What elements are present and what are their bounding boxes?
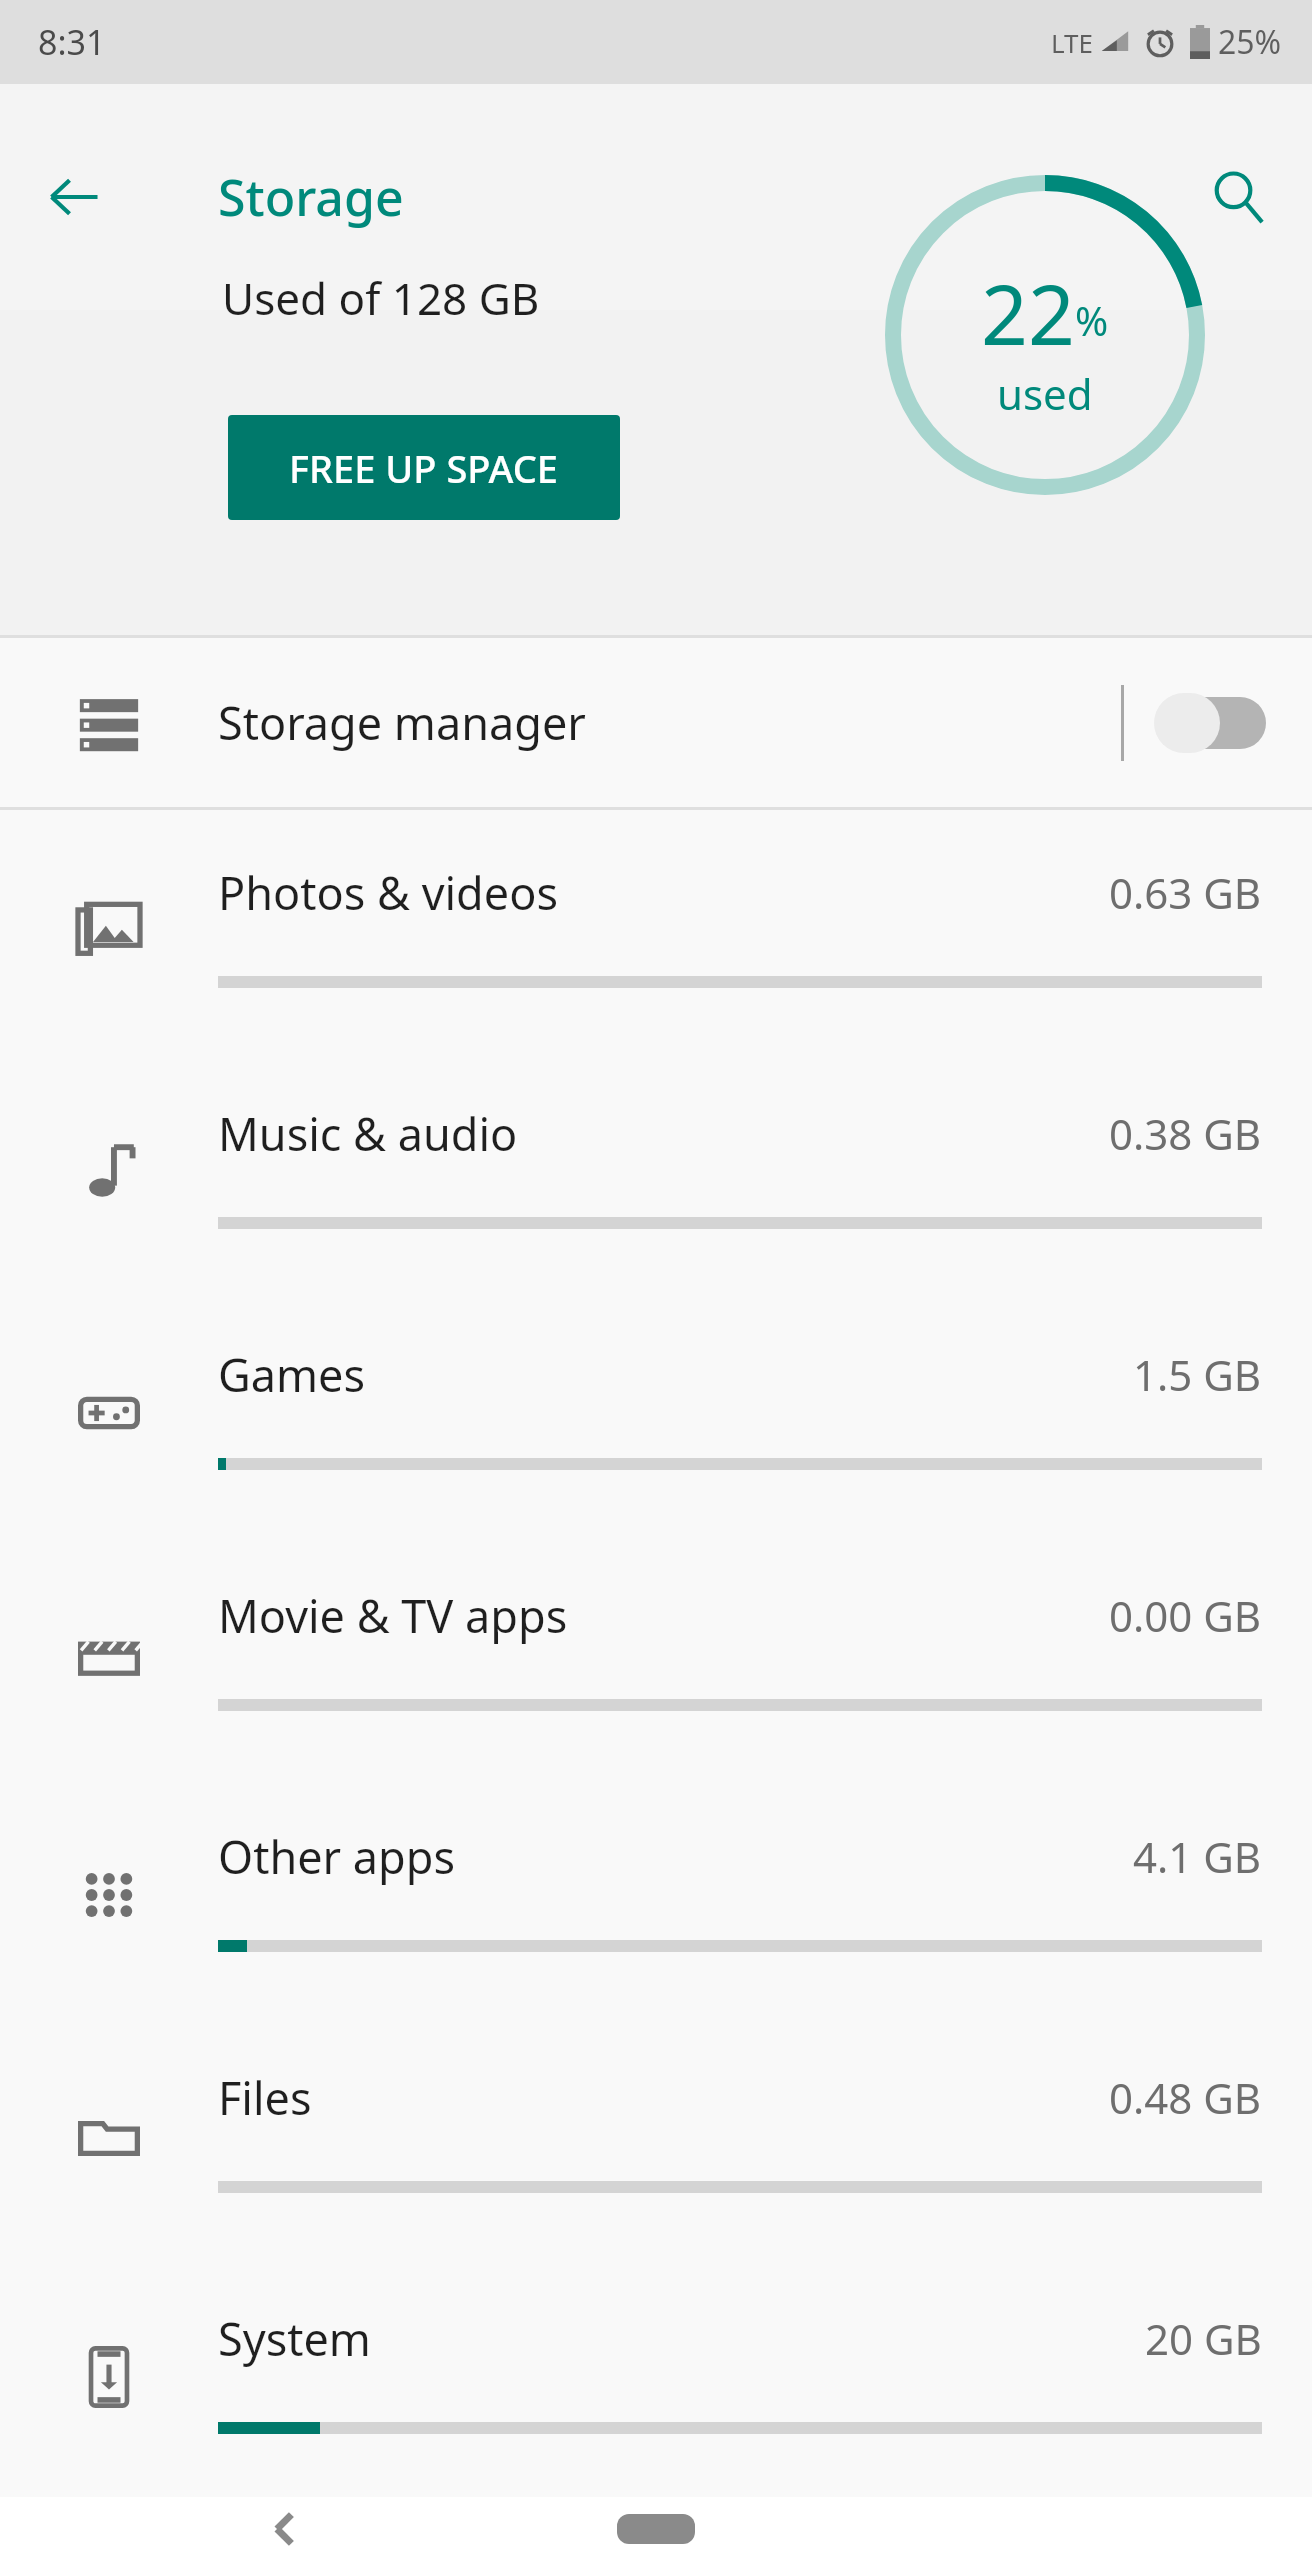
button[interactable]: Search: [1186, 145, 1290, 249]
button[interactable]: Movie & TV apps: [0, 1533, 1312, 1774]
staticText: Games: [218, 1344, 366, 1405]
staticText: 25%: [1218, 20, 1282, 64]
staticText: Files: [218, 2067, 312, 2128]
staticText: Movie & TV apps: [218, 1585, 568, 1646]
staticText: 22: [981, 257, 1075, 369]
staticText: 0.38 GB: [1109, 1105, 1262, 1162]
button[interactable]: System: [0, 2256, 1312, 2497]
staticText: FREE UP SPACE: [289, 442, 559, 494]
staticText: Music & audio: [218, 1103, 518, 1164]
button[interactable]: Music & audio: [0, 1051, 1312, 1292]
staticText: 1.5 GB: [1133, 1346, 1262, 1403]
staticText: LTE: [1051, 25, 1094, 60]
staticText: 0.48 GB: [1109, 2069, 1262, 2126]
staticText: Other apps: [218, 1826, 456, 1887]
button[interactable]: Photos & videos: [0, 810, 1312, 1051]
staticText: 0.63 GB: [1109, 864, 1262, 921]
staticText: 0.00 GB: [1109, 1587, 1262, 1644]
staticText: Storage: [218, 163, 404, 231]
button[interactable]: Storage manager: [0, 638, 1312, 807]
button[interactable]: Back: [230, 2497, 340, 2560]
button[interactable]: Storage manager toggle: [1124, 663, 1296, 783]
staticText: %: [1075, 293, 1109, 347]
button[interactable]: Files: [0, 2015, 1312, 2256]
button[interactable]: Games: [0, 1292, 1312, 1533]
staticText: Storage manager: [218, 692, 586, 753]
button[interactable]: FREE UP SPACE: [228, 415, 620, 520]
button[interactable]: Other apps: [0, 1774, 1312, 2015]
staticText: Used of 128 GB: [222, 268, 540, 328]
staticText: 8:31: [38, 19, 106, 65]
staticText: Photos & videos: [218, 862, 558, 923]
staticText: 4.1 GB: [1133, 1828, 1262, 1885]
button[interactable]: Home: [581, 2497, 731, 2560]
button[interactable]: Back: [22, 145, 126, 249]
staticText: System: [218, 2308, 371, 2369]
staticText: used: [997, 365, 1093, 422]
staticText: 20 GB: [1145, 2310, 1262, 2367]
